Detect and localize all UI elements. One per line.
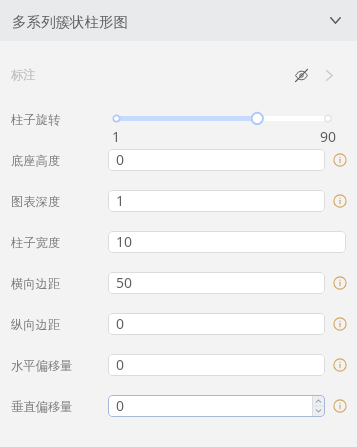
button[interactable] <box>0 54 357 95</box>
staticText: 0 <box>116 314 125 333</box>
staticText: 0 <box>116 150 125 169</box>
button[interactable]: Collapse <box>325 10 345 30</box>
button[interactable]: 0 <box>108 313 325 335</box>
staticText: 1 <box>116 191 125 210</box>
button[interactable]: Info <box>333 276 347 290</box>
button[interactable]: More <box>320 66 339 85</box>
staticText: 90 <box>320 127 337 146</box>
button[interactable]: 10 <box>108 231 346 253</box>
staticText: 图表深度 <box>11 194 61 209</box>
staticText: 垂直偏移量 <box>11 399 73 414</box>
button[interactable]: 50 <box>108 272 325 294</box>
button[interactable]: Info <box>333 153 347 167</box>
staticText: 1 <box>112 127 121 146</box>
button[interactable]: Rotation slider <box>108 108 340 129</box>
staticText: 纵向边距 <box>11 317 61 332</box>
button[interactable]: Stepper <box>312 396 325 416</box>
staticText: 标注 <box>11 67 36 82</box>
staticText: 横向边距 <box>11 276 61 291</box>
staticText: 50 <box>116 273 133 292</box>
staticText: 柱子旋转 <box>11 112 61 127</box>
button[interactable]: Info <box>333 358 347 372</box>
button[interactable]: Info <box>333 317 347 331</box>
staticText: 10 <box>116 232 133 251</box>
button[interactable]: 0 <box>108 395 325 417</box>
staticText: 水平偏移量 <box>11 358 73 373</box>
button[interactable]: Info <box>333 399 347 413</box>
staticText: 0 <box>116 355 125 374</box>
staticText: 底座高度 <box>11 153 61 168</box>
staticText: 柱子宽度 <box>11 235 61 250</box>
button[interactable]: 多系列簇状柱形图 <box>0 0 357 41</box>
button[interactable]: 0 <box>108 354 325 376</box>
staticText: 0 <box>116 396 125 415</box>
button[interactable]: Info <box>333 194 347 208</box>
staticText: 多系列簇状柱形图 <box>12 13 128 31</box>
button[interactable]: 0 <box>108 149 325 171</box>
button[interactable]: Hidden <box>292 66 311 85</box>
button[interactable]: 1 <box>108 190 325 212</box>
